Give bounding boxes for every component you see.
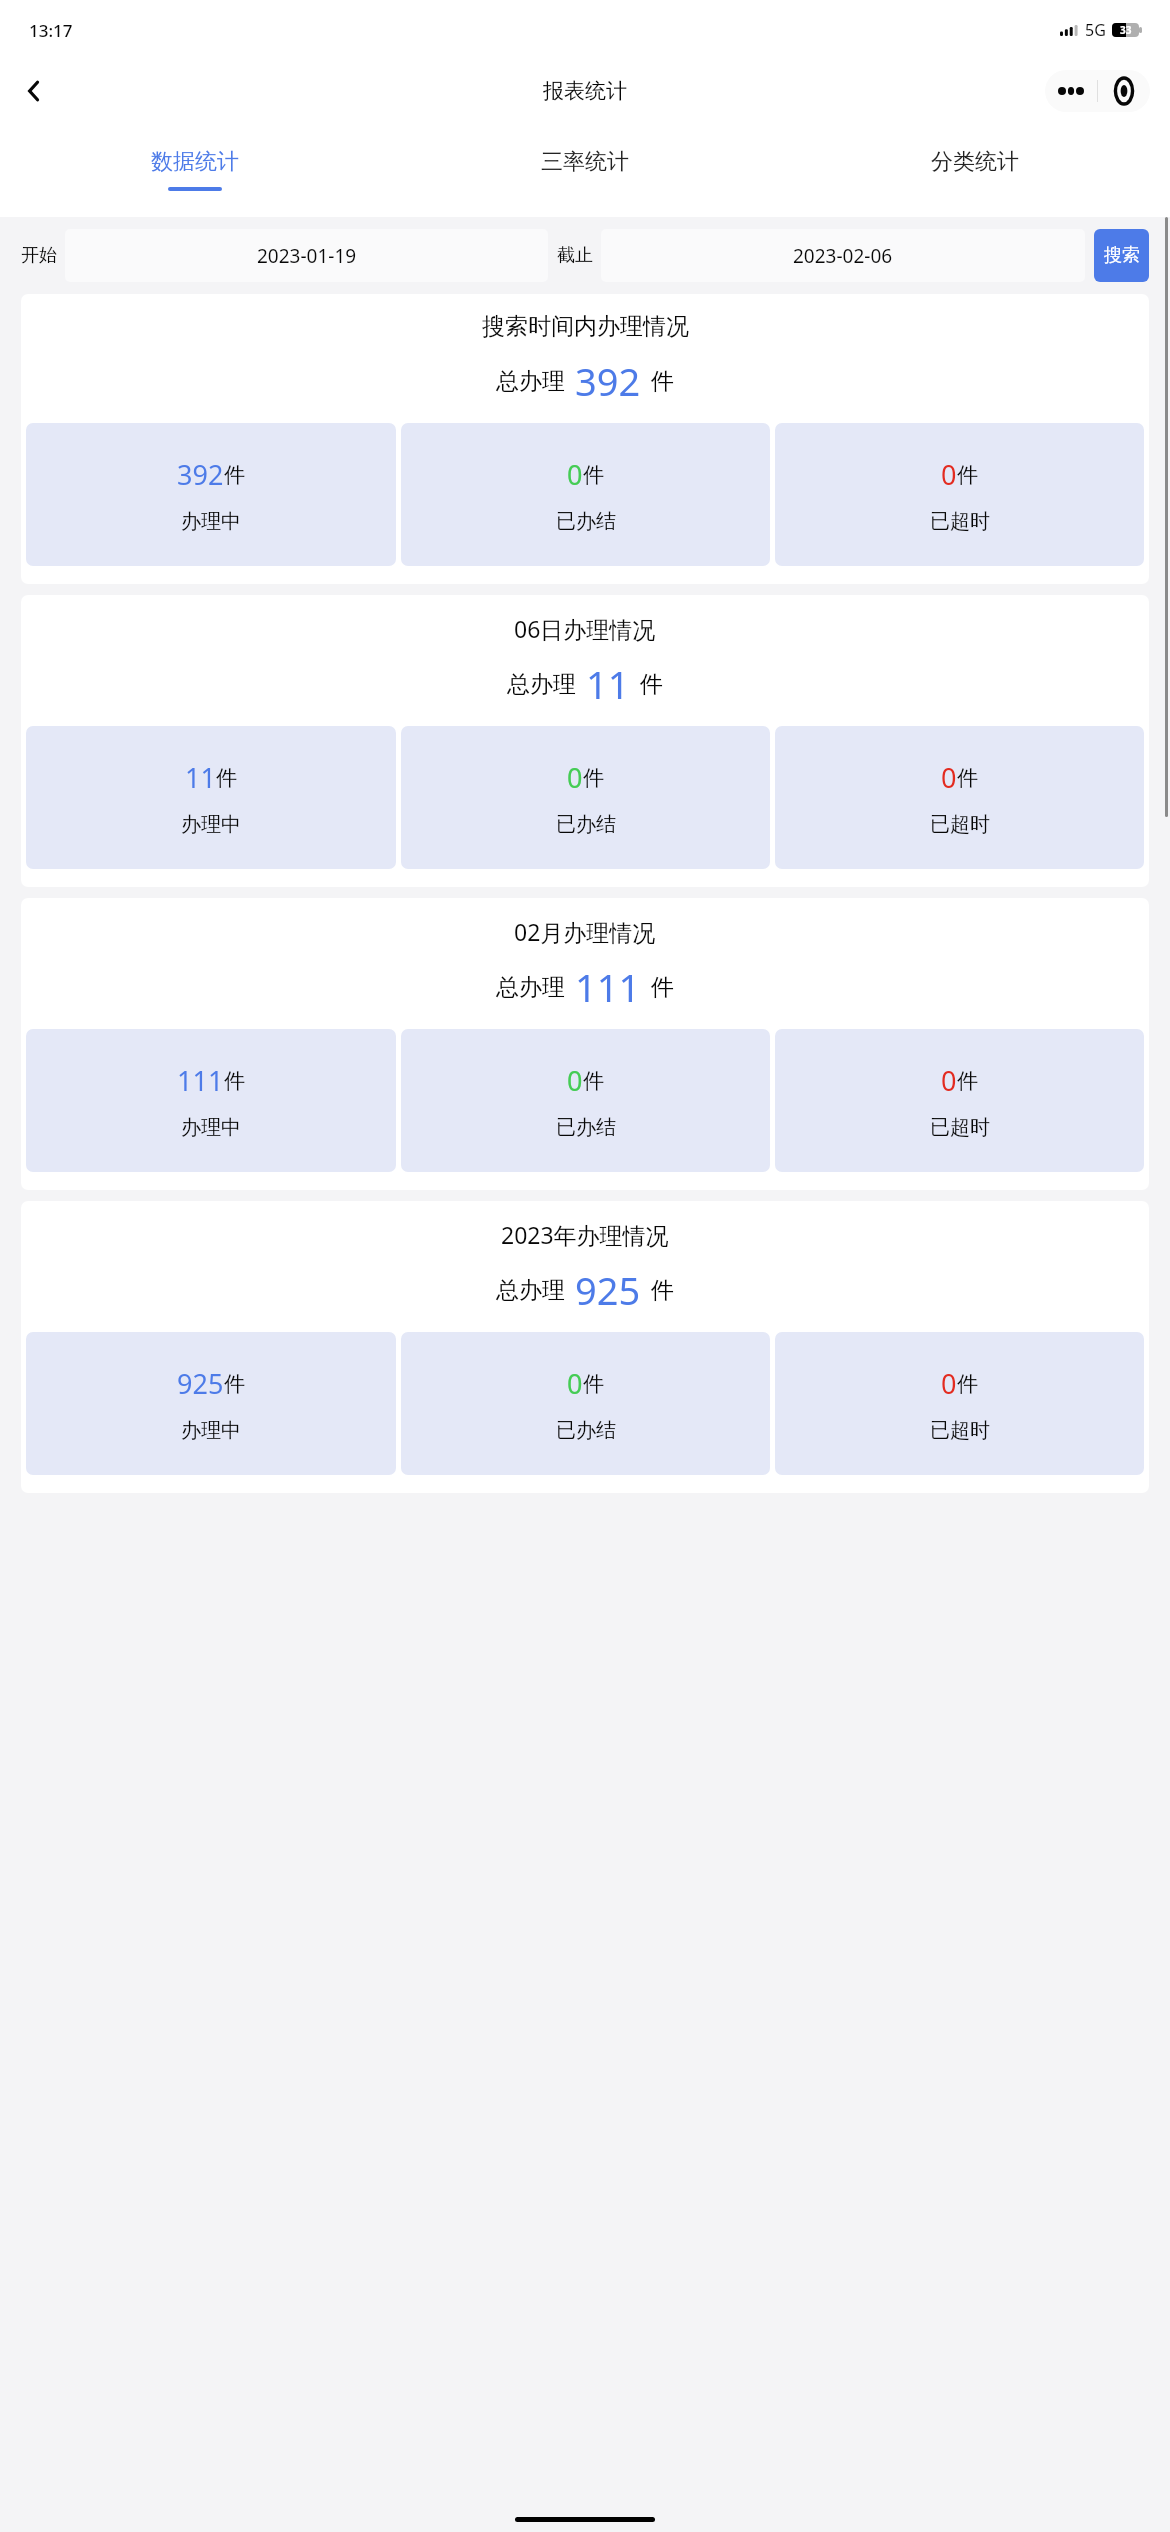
staticText: 三率统计: [541, 148, 629, 176]
staticText: 件: [640, 670, 663, 699]
staticText: 件: [651, 367, 674, 396]
staticText: 已超时: [930, 1115, 990, 1140]
staticText: 总办理: [507, 670, 576, 699]
staticText: 已办结: [556, 812, 616, 837]
button[interactable]: 0: [775, 1029, 1144, 1172]
staticText: 已办结: [556, 509, 616, 534]
staticText: 搜索: [1104, 244, 1140, 267]
staticText: 件: [583, 1371, 604, 1397]
staticText: 总办理: [496, 973, 565, 1002]
button[interactable]: 0: [401, 726, 770, 869]
staticText: 开始: [21, 244, 57, 267]
staticText: 2023-01-19: [257, 243, 357, 269]
button[interactable]: Back: [12, 69, 56, 113]
button[interactable]: 2023-01-19: [65, 229, 548, 282]
staticText: 已办结: [556, 1115, 616, 1140]
staticText: 截止: [557, 244, 593, 267]
staticText: 0: [567, 1365, 583, 1402]
staticText: 件: [957, 1371, 978, 1397]
staticText: 0: [941, 456, 957, 493]
staticText: 0: [567, 1062, 583, 1099]
staticText: 件: [651, 973, 674, 1002]
button[interactable]: 111: [26, 1029, 396, 1172]
staticText: 392: [575, 355, 641, 407]
staticText: 11: [586, 658, 630, 710]
staticText: 件: [583, 462, 604, 488]
staticText: 2023年办理情况: [501, 1219, 669, 1250]
button[interactable]: More: [1045, 70, 1097, 112]
staticText: 报表统计: [543, 78, 627, 104]
staticText: 件: [583, 1068, 604, 1094]
staticText: 0: [567, 456, 583, 493]
button[interactable]: Close: [1098, 70, 1150, 112]
staticText: 0: [941, 1365, 957, 1402]
staticText: 总办理: [496, 367, 565, 396]
button[interactable]: 0: [775, 726, 1144, 869]
staticText: 件: [957, 462, 978, 488]
staticText: 办理中: [181, 509, 241, 534]
button[interactable]: 0: [401, 1332, 770, 1475]
staticText: 02月办理情况: [514, 916, 656, 947]
staticText: 33: [1120, 23, 1132, 37]
staticText: 111: [177, 1062, 224, 1099]
staticText: 分类统计: [931, 148, 1019, 176]
staticText: 件: [957, 765, 978, 791]
staticText: 件: [651, 1276, 674, 1305]
button[interactable]: 925: [26, 1332, 396, 1475]
button[interactable]: 11: [26, 726, 396, 869]
staticText: 办理中: [181, 812, 241, 837]
staticText: 件: [957, 1068, 978, 1094]
button[interactable]: 三率统计: [390, 122, 780, 217]
staticText: 已超时: [930, 812, 990, 837]
staticText: 件: [216, 765, 237, 791]
staticText: 5G: [1085, 19, 1106, 41]
button[interactable]: 2023-02-06: [601, 229, 1085, 282]
staticText: 已办结: [556, 1418, 616, 1443]
staticText: 已超时: [930, 1418, 990, 1443]
staticText: 件: [224, 1068, 245, 1094]
staticText: 0: [941, 759, 957, 796]
staticText: 111: [575, 961, 641, 1013]
staticText: 0: [941, 1062, 957, 1099]
staticText: 件: [224, 1371, 245, 1397]
staticText: 办理中: [181, 1418, 241, 1443]
button[interactable]: 0: [401, 423, 770, 566]
staticText: 2023-02-06: [793, 243, 893, 269]
staticText: 925: [575, 1264, 641, 1316]
staticText: 数据统计: [151, 148, 239, 176]
staticText: 392: [177, 456, 224, 493]
staticText: 已超时: [930, 509, 990, 534]
button[interactable]: 0: [401, 1029, 770, 1172]
button[interactable]: 分类统计: [780, 122, 1170, 217]
staticText: 件: [583, 765, 604, 791]
button[interactable]: 392: [26, 423, 396, 566]
button[interactable]: 数据统计: [0, 122, 390, 217]
staticText: 总办理: [496, 1276, 565, 1305]
staticText: 13:17: [29, 19, 73, 42]
staticText: 办理中: [181, 1115, 241, 1140]
staticText: 搜索时间内办理情况: [482, 312, 689, 341]
staticText: 925: [177, 1365, 224, 1402]
button[interactable]: 0: [775, 1332, 1144, 1475]
staticText: 11: [185, 759, 216, 796]
staticText: 件: [224, 462, 245, 488]
button[interactable]: 搜索: [1094, 229, 1149, 282]
staticText: 06日办理情况: [514, 613, 656, 644]
button[interactable]: 0: [775, 423, 1144, 566]
staticText: 0: [567, 759, 583, 796]
